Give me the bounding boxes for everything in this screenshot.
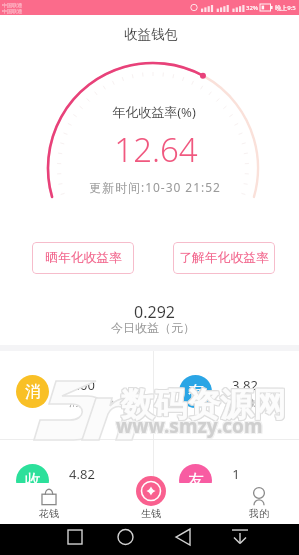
staticText: 数码资源网 (121, 385, 286, 427)
staticText: 0.292 (134, 301, 175, 323)
staticText: 数码资源网 (122, 385, 287, 427)
staticText: 生钱 (141, 507, 161, 520)
staticText: 消费总存款 (69, 397, 114, 408)
staticText: 数码资源网 (120, 383, 285, 425)
staticText: 花钱 (39, 507, 59, 520)
button[interactable]: 生钱 (125, 476, 177, 523)
staticText: www.smzy.com (115, 412, 262, 438)
button[interactable]: 了解年化收益率 (173, 242, 275, 274)
staticText: 友 (188, 471, 204, 491)
staticText: 中国联通 (2, 2, 22, 8)
staticText: 存 (188, 382, 204, 402)
staticText: 数码资源网 (122, 384, 287, 426)
staticText: 1 (232, 465, 240, 483)
staticText: 32% (246, 4, 258, 12)
staticText: www.smzy.com (117, 414, 264, 440)
button[interactable]: 存 (154, 351, 299, 439)
staticText: www.smzy.com (115, 414, 262, 440)
staticText: 消 (25, 382, 41, 402)
staticText: 总存款 (232, 397, 259, 408)
staticText: 数码资源网 (120, 385, 285, 427)
button[interactable]: 消 (0, 351, 153, 439)
staticText: 中国联通 (2, 8, 22, 14)
staticText: 数码资源网 (121, 383, 286, 425)
staticText: 数码资源网 (121, 384, 286, 426)
staticText: www.smzy.com (116, 414, 263, 440)
staticText: 数码资源网 (122, 383, 287, 425)
button[interactable]: 我的 (233, 476, 285, 523)
staticText: 今日收益（元） (111, 320, 195, 335)
button[interactable]: 友 (154, 440, 299, 528)
staticText: www.smzy.com (117, 413, 264, 439)
staticText: www.smzy.com (116, 413, 263, 439)
staticText: 4.82 (69, 465, 95, 483)
staticText: 3.00 (69, 376, 95, 394)
staticText: www.smzy.com (115, 413, 262, 439)
button[interactable]: 晒年化收益率 (32, 242, 134, 274)
staticText: 我的 (249, 507, 269, 520)
staticText: 更新时间:10-30 21:52 (89, 179, 221, 195)
staticText: 晚上9:5 (275, 4, 296, 12)
staticText: 3.82 (232, 376, 258, 394)
button[interactable]: 花钱 (23, 476, 75, 523)
staticText: 收 (25, 471, 41, 491)
staticText: www.smzy.com (116, 412, 263, 438)
staticText: 晒年化收益率 (45, 250, 122, 266)
staticText: 了解年化收益率 (179, 250, 269, 266)
staticText: 12.64 (114, 127, 198, 172)
button[interactable]: 收 (0, 440, 153, 528)
staticText: 收益钱包 (124, 26, 178, 43)
staticText: www.smzy.com (117, 412, 264, 438)
staticText: 数码资源网 (120, 384, 285, 426)
staticText: 年化收益率(%) (112, 103, 196, 121)
